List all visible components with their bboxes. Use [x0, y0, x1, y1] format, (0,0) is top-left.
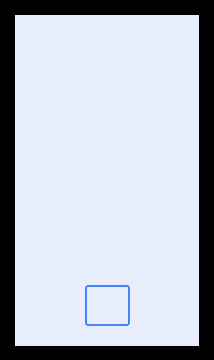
- button[interactable]: Square action button: [85, 285, 130, 326]
